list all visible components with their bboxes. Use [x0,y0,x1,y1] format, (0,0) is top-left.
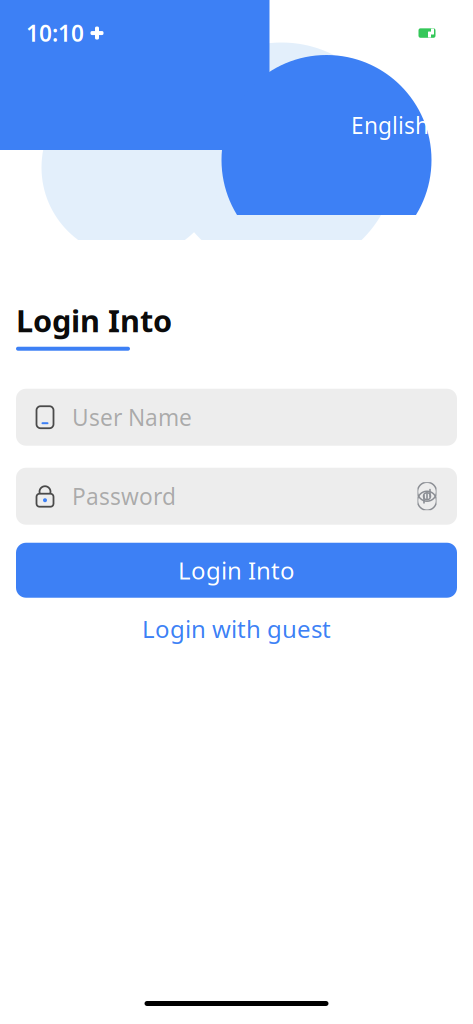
staticText: User Name [72,402,192,432]
staticText: Login Into [178,554,295,586]
button[interactable]: Login Into [16,543,457,598]
button[interactable]: Login with guest [16,612,457,646]
staticText: 10:10 [26,18,84,48]
button[interactable]: English [347,104,451,146]
staticText: Login Into [16,300,172,341]
button[interactable]: User Name [16,389,457,446]
staticText: Login with guest [142,613,331,645]
staticText: English [351,110,429,140]
staticText: Password [72,481,176,511]
button[interactable]: Password [16,468,457,525]
